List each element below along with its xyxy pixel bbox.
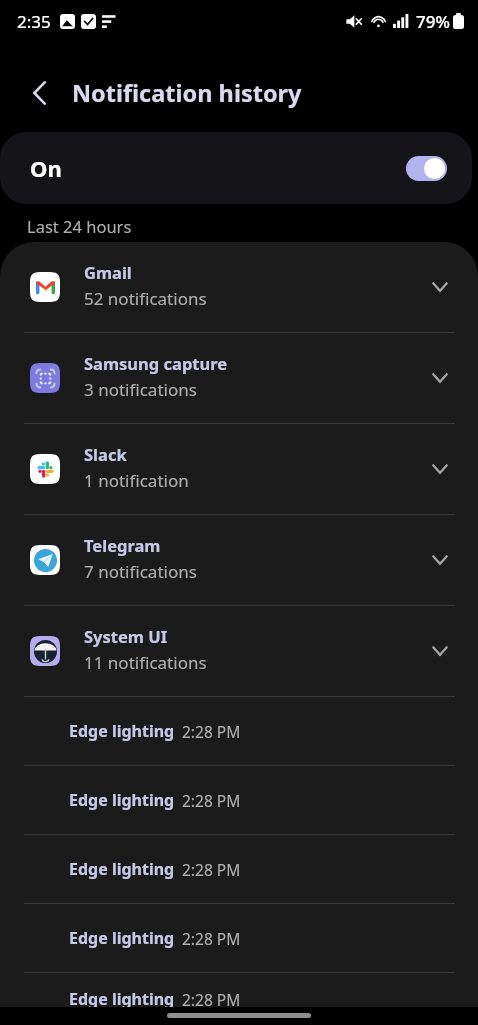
staticText: 52 notifications xyxy=(84,287,207,310)
button[interactable]: Edge lighting xyxy=(0,697,478,765)
staticText: Edge lighting xyxy=(69,789,175,811)
staticText: 2:28 PM xyxy=(182,859,241,880)
button[interactable]: Edge lighting xyxy=(0,904,478,972)
staticText: 2:28 PM xyxy=(182,790,241,811)
button[interactable]: System UI xyxy=(0,606,478,696)
button[interactable]: Telegram xyxy=(0,515,478,605)
button[interactable]: On xyxy=(0,132,472,204)
staticText: On xyxy=(30,153,62,183)
staticText: System UI xyxy=(84,625,168,647)
staticText: Slack xyxy=(84,443,127,465)
staticText: 2:28 PM xyxy=(182,928,241,949)
button[interactable]: Edge lighting xyxy=(0,766,478,834)
staticText: Gmail xyxy=(84,261,132,283)
staticText: Edge lighting xyxy=(69,927,175,949)
staticText: 1 notification xyxy=(84,469,189,492)
button[interactable]: Back xyxy=(17,71,61,115)
staticText: Samsung capture xyxy=(84,352,228,374)
staticText: Telegram xyxy=(84,534,161,556)
button[interactable]: Edge lighting xyxy=(0,835,478,903)
staticText: Notification history xyxy=(72,77,302,109)
staticText: 7 notifications xyxy=(84,560,197,583)
button[interactable]: Edge lighting xyxy=(0,973,478,1025)
staticText: 2:28 PM xyxy=(182,721,241,742)
staticText: 2:28 PM xyxy=(182,989,241,1010)
button[interactable]: Slack xyxy=(0,424,478,514)
staticText: 3 notifications xyxy=(84,378,197,401)
staticText: Edge lighting xyxy=(69,720,175,742)
button[interactable]: Gmail xyxy=(0,242,478,332)
staticText: 79% xyxy=(416,10,450,33)
staticText: Last 24 hours xyxy=(27,215,132,237)
staticText: 11 notifications xyxy=(84,651,207,674)
button[interactable]: Samsung capture xyxy=(0,333,478,423)
staticText: 2:35 xyxy=(17,10,51,33)
staticText: Edge lighting xyxy=(69,858,175,880)
staticText: Edge lighting xyxy=(69,988,175,1010)
